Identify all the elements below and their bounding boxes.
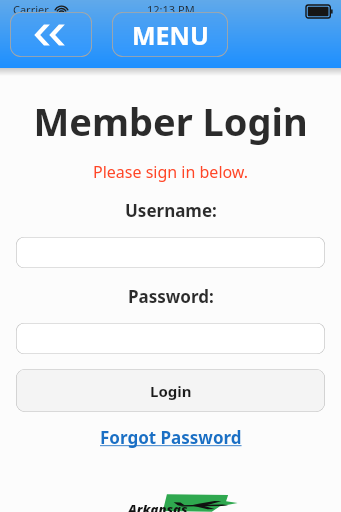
staticText: Forgot Password [100,426,242,449]
staticText: Carrier [13,2,49,17]
staticText: Please sign in below. [93,161,249,183]
staticText: Login [150,381,192,401]
staticText: Username: [125,199,217,222]
button[interactable]: MENU [112,12,228,57]
button[interactable]: Login [16,369,325,412]
button[interactable]: Back [10,12,92,57]
button[interactable] [16,237,325,268]
button[interactable] [16,323,325,354]
staticText: 12:13 PM [147,2,195,17]
staticText: MENU [132,18,209,52]
staticText: Member Login [33,95,308,147]
button[interactable]: Forgot Password [94,424,248,451]
staticText: Password: [128,285,214,308]
staticText: Arkansas [128,500,188,512]
